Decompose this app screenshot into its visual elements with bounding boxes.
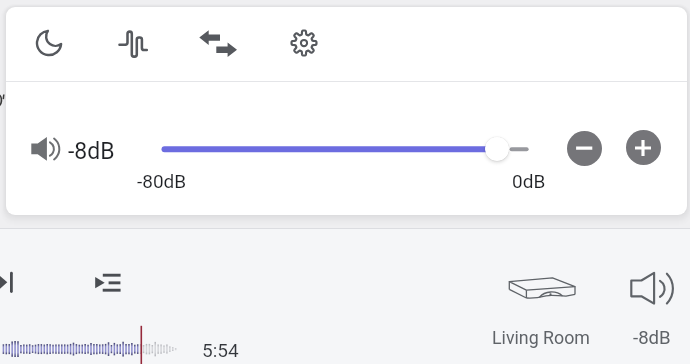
button[interactable]: -8dB bbox=[620, 265, 690, 357]
button[interactable]: Decrease volume bbox=[567, 131, 602, 166]
button[interactable]: Increase volume bbox=[626, 130, 661, 165]
button[interactable]: Next track bbox=[0, 261, 30, 305]
button[interactable]: Signal path bbox=[111, 21, 155, 65]
button[interactable]: Play queue bbox=[88, 261, 132, 305]
button[interactable]: Volume level bbox=[485, 137, 509, 161]
button[interactable]: Sleep timer bbox=[27, 21, 71, 65]
staticText: 5:54 bbox=[202, 339, 239, 361]
button[interactable]: Transfer zone bbox=[196, 21, 240, 65]
button[interactable]: Settings bbox=[282, 21, 326, 65]
staticText: -8dB bbox=[633, 327, 671, 349]
staticText: -80dB bbox=[137, 170, 187, 192]
staticText: 0dB bbox=[512, 170, 546, 192]
staticText: -8dB bbox=[68, 138, 115, 165]
button[interactable]: Living Room bbox=[470, 265, 615, 357]
staticText: Living Room bbox=[492, 327, 590, 348]
